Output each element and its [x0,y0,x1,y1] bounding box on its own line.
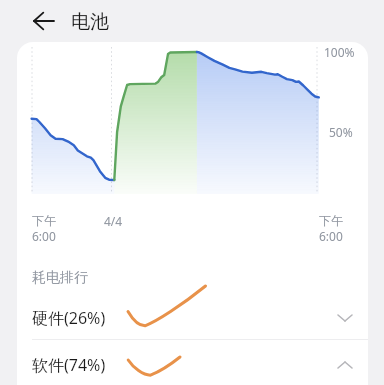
staticText: 6:00 [32,228,56,244]
staticText: 电池 [71,10,109,34]
staticText: 50% [329,124,353,140]
button[interactable]: Back [25,2,63,40]
staticText: 耗电排行 [32,269,88,287]
staticText: 硬件(26%) [32,307,106,329]
staticText: 100% [324,44,355,60]
button[interactable]: 软件(74%) [17,340,368,385]
staticText: 4/4 [104,213,123,229]
staticText: 6:00 [319,228,343,244]
staticText: 下午 [319,213,343,228]
staticText: 软件(74%) [32,354,106,376]
button[interactable]: 硬件(26%) [17,296,368,339]
staticText: 下午 [32,213,56,228]
